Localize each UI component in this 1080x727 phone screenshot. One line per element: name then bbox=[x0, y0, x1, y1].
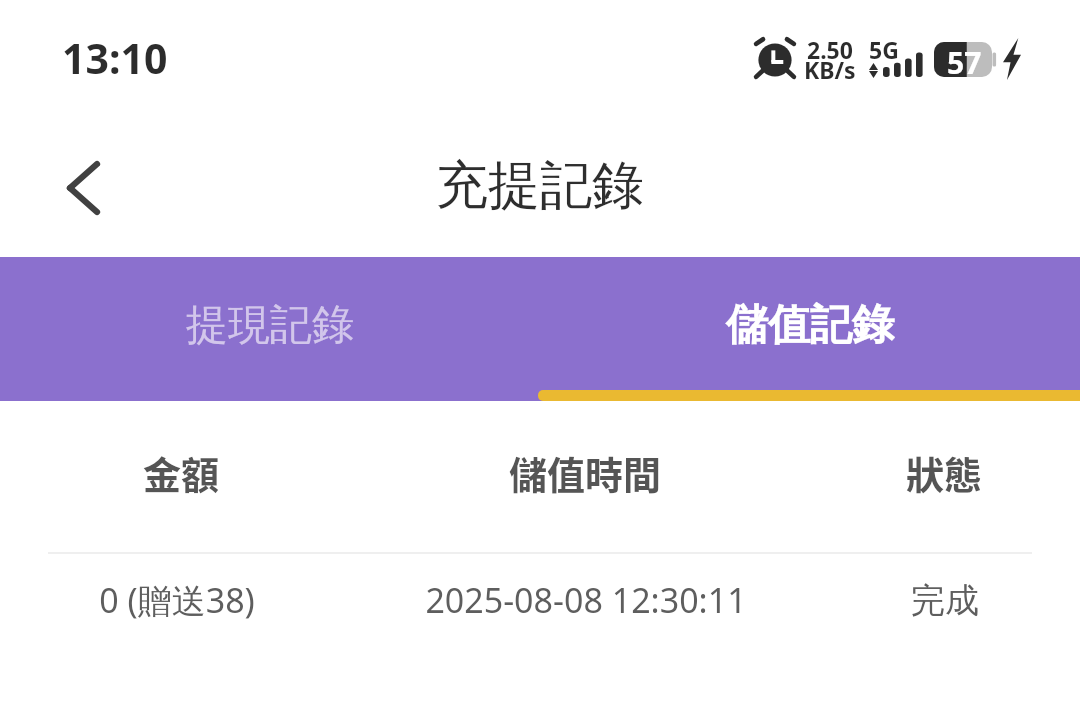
staticText: KB/s bbox=[804, 54, 856, 85]
staticText: 2025-08-08 12:30:11 bbox=[315, 577, 857, 623]
staticText: 狀態 bbox=[856, 445, 1032, 500]
staticText: 完成 bbox=[857, 579, 1033, 622]
staticText: 5G bbox=[869, 34, 899, 65]
button[interactable]: 儲值記錄 bbox=[540, 257, 1080, 401]
button[interactable]: 0 (贈送38) bbox=[0, 554, 1080, 652]
staticText: 儲值記錄 bbox=[726, 299, 894, 352]
button[interactable]: Back bbox=[40, 138, 126, 238]
button[interactable]: 提現記錄 bbox=[0, 257, 540, 401]
staticText: 13:10 bbox=[62, 30, 168, 86]
staticText: 0 (贈送38) bbox=[44, 577, 310, 623]
staticText: 充提記錄 bbox=[436, 153, 644, 219]
staticText: 2.50 bbox=[807, 34, 853, 65]
staticText: 儲值時間 bbox=[314, 445, 856, 500]
staticText: 提現記錄 bbox=[186, 299, 354, 352]
staticText: 57 bbox=[947, 42, 982, 83]
staticText: 金額 bbox=[48, 445, 314, 500]
